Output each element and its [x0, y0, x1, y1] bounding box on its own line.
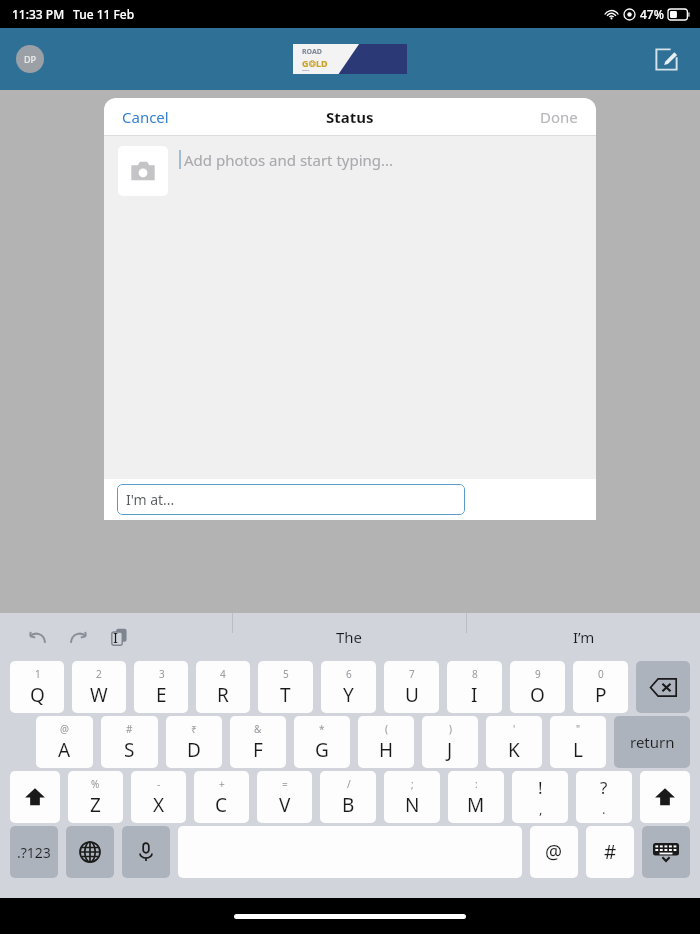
button[interactable]: ₹ — [166, 716, 222, 768]
staticText: Y — [343, 682, 354, 708]
button[interactable]: Profile — [16, 45, 44, 73]
staticText: D — [187, 737, 201, 763]
staticText: Status — [326, 107, 374, 127]
button[interactable]: - — [131, 771, 186, 823]
button[interactable]: Paste — [104, 622, 134, 652]
button[interactable]: ' — [486, 716, 542, 768]
button[interactable]: ) — [422, 716, 478, 768]
button[interactable]: Change keyboard — [66, 826, 114, 878]
staticText: C — [215, 792, 228, 818]
staticText: V — [279, 792, 291, 818]
staticText: U — [405, 682, 419, 708]
staticText: 3 — [159, 667, 165, 681]
button[interactable]: # — [101, 716, 158, 768]
button[interactable]: Shift — [10, 771, 60, 823]
staticText: 6 — [346, 667, 352, 681]
staticText: J — [447, 737, 453, 763]
button[interactable]: Cancel — [104, 107, 169, 127]
staticText: # — [126, 722, 133, 736]
staticText: The — [336, 627, 363, 647]
button[interactable]: + — [194, 771, 249, 823]
staticText: ) — [449, 722, 452, 736]
staticText: 0 — [598, 667, 604, 681]
button[interactable]: % — [68, 771, 123, 823]
staticText: # — [604, 839, 617, 865]
button[interactable]: Dictation — [122, 826, 170, 878]
button[interactable]: 2 — [72, 661, 126, 713]
button[interactable]: I’m — [467, 613, 700, 661]
button[interactable]: 6 — [321, 661, 376, 713]
button[interactable]: : — [448, 771, 504, 823]
button[interactable]: ? — [576, 771, 632, 823]
staticText: ( — [385, 722, 388, 736]
staticText: 5 — [283, 667, 289, 681]
button[interactable]: @ — [530, 826, 578, 878]
staticText: & — [254, 722, 262, 736]
staticText: I — [471, 682, 478, 708]
button[interactable]: ; — [384, 771, 440, 823]
staticText: 7 — [409, 667, 415, 681]
staticText: @ — [60, 722, 69, 736]
staticText: ' — [513, 722, 516, 736]
staticText: 2 — [96, 667, 102, 681]
button[interactable]: Done — [540, 107, 596, 127]
button[interactable]: Undo — [22, 622, 52, 652]
button[interactable]: Add photo — [118, 146, 168, 196]
staticText: , — [539, 800, 543, 818]
button[interactable]: .?123 — [10, 826, 58, 878]
staticText: . — [602, 800, 606, 818]
button[interactable]: ( — [358, 716, 414, 768]
button[interactable]: " — [550, 716, 606, 768]
button[interactable]: 8 — [447, 661, 502, 713]
staticText: T — [280, 682, 291, 708]
staticText: .?123 — [17, 843, 51, 862]
button[interactable]: return — [614, 716, 690, 768]
button[interactable]: 5 — [258, 661, 313, 713]
staticText: * — [319, 722, 325, 736]
staticText: K — [508, 737, 520, 763]
staticText: ? — [600, 776, 608, 799]
staticText: E — [156, 682, 167, 708]
button[interactable]: Shift — [640, 771, 690, 823]
button[interactable]: 0 — [573, 661, 628, 713]
button[interactable]: Hide keyboard — [642, 826, 690, 878]
button[interactable]: 7 — [384, 661, 439, 713]
button[interactable]: Compose — [646, 39, 686, 79]
button[interactable]: I'm at... — [117, 484, 465, 515]
staticText: F — [253, 737, 263, 763]
staticText: P — [595, 682, 607, 708]
button[interactable]: Backspace — [636, 661, 690, 713]
staticText: 47% — [640, 6, 664, 22]
staticText: = — [282, 777, 288, 791]
staticText: Tue 11 Feb — [73, 6, 135, 22]
button[interactable]: @ — [36, 716, 93, 768]
staticText: : — [475, 777, 478, 791]
staticText: X — [153, 792, 165, 818]
button[interactable]: # — [586, 826, 634, 878]
staticText: " — [576, 722, 581, 736]
staticText: L — [573, 737, 583, 763]
button[interactable]: 4 — [196, 661, 250, 713]
button[interactable]: * — [294, 716, 350, 768]
staticText: 9 — [535, 667, 541, 681]
staticText: 1 — [35, 667, 41, 681]
button[interactable]: I — [0, 613, 232, 661]
staticText: / — [347, 777, 351, 791]
staticText: G❂LD — [302, 57, 328, 69]
button[interactable]: & — [230, 716, 286, 768]
staticText: N — [405, 792, 420, 818]
button[interactable]: 9 — [510, 661, 565, 713]
button[interactable]: 3 — [134, 661, 188, 713]
button[interactable]: ! — [512, 771, 568, 823]
staticText: Q — [30, 682, 45, 708]
button[interactable]: 1 — [10, 661, 64, 713]
staticText: 4 — [220, 667, 226, 681]
button[interactable]: = — [257, 771, 312, 823]
staticText: I'm at... — [126, 490, 175, 509]
staticText: - — [157, 777, 161, 791]
staticText: ₹ — [191, 722, 197, 736]
button[interactable]: The — [233, 613, 466, 661]
button[interactable]: / — [320, 771, 376, 823]
button[interactable]: Redo — [63, 622, 93, 652]
